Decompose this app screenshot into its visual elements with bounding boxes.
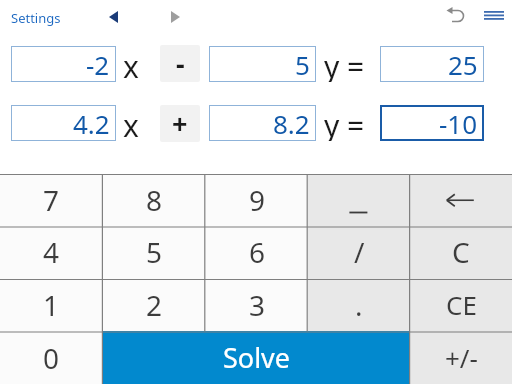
button[interactable]: 0 — [0, 331, 103, 384]
button[interactable]: 8.2 — [209, 105, 316, 141]
button[interactable]: 6 — [206, 226, 308, 278]
button[interactable]: 3 — [206, 278, 308, 331]
staticText: Solve — [223, 339, 291, 376]
button[interactable]: +/- — [410, 331, 512, 384]
button[interactable]: 7 — [0, 174, 103, 226]
staticText: / — [354, 233, 365, 271]
staticText: -2 — [86, 47, 110, 82]
staticText: 5 — [146, 233, 163, 271]
staticText: x — [123, 46, 139, 82]
button[interactable]: 5 — [103, 226, 206, 278]
button[interactable]: 2 — [103, 278, 206, 331]
button[interactable]: C — [410, 226, 512, 278]
staticText: 4.2 — [73, 106, 110, 141]
staticText: 6 — [249, 233, 266, 271]
staticText: C — [452, 233, 470, 271]
button[interactable]: 25 — [380, 46, 484, 82]
staticText: +/- — [445, 340, 478, 375]
staticText: - — [176, 45, 185, 82]
staticText: -10 — [439, 106, 478, 141]
staticText: 3 — [249, 286, 266, 324]
button[interactable]: - — [160, 45, 200, 82]
staticText: 8 — [146, 181, 163, 219]
staticText: 5 — [295, 47, 310, 82]
staticText: x — [123, 105, 139, 141]
button[interactable]: Settings — [8, 6, 61, 30]
button[interactable]: -10 — [380, 105, 484, 141]
staticText: . — [355, 286, 363, 324]
staticText: 8.2 — [273, 106, 310, 141]
button[interactable]: -2 — [11, 46, 116, 82]
staticText: y = — [324, 105, 365, 141]
button[interactable]: + — [160, 105, 200, 142]
button[interactable]: CE — [410, 278, 512, 331]
button[interactable]: 9 — [206, 174, 308, 226]
staticText: + — [172, 105, 188, 142]
button[interactable] — [444, 4, 468, 26]
staticText: 7 — [43, 181, 60, 219]
button[interactable]: 8 — [103, 174, 206, 226]
staticText: CE — [446, 287, 477, 322]
staticText: 2 — [146, 286, 163, 324]
staticText: 4 — [43, 233, 60, 271]
button[interactable] — [308, 174, 410, 226]
button[interactable]: 4.2 — [11, 105, 116, 141]
button[interactable] — [410, 174, 512, 226]
staticText: 0 — [43, 339, 60, 377]
button[interactable] — [104, 8, 124, 26]
button[interactable]: 4 — [0, 226, 103, 278]
staticText: 9 — [249, 181, 266, 219]
staticText: 1 — [43, 286, 60, 324]
button[interactable]: Solve — [103, 331, 410, 384]
button[interactable] — [166, 8, 186, 26]
button[interactable]: / — [308, 226, 410, 278]
button[interactable]: 1 — [0, 278, 103, 331]
staticText: Settings — [11, 9, 61, 27]
staticText: 25 — [448, 47, 478, 82]
staticText: y = — [324, 46, 365, 82]
button[interactable]: . — [308, 278, 410, 331]
button[interactable]: 5 — [209, 46, 316, 82]
button[interactable] — [484, 11, 505, 22]
